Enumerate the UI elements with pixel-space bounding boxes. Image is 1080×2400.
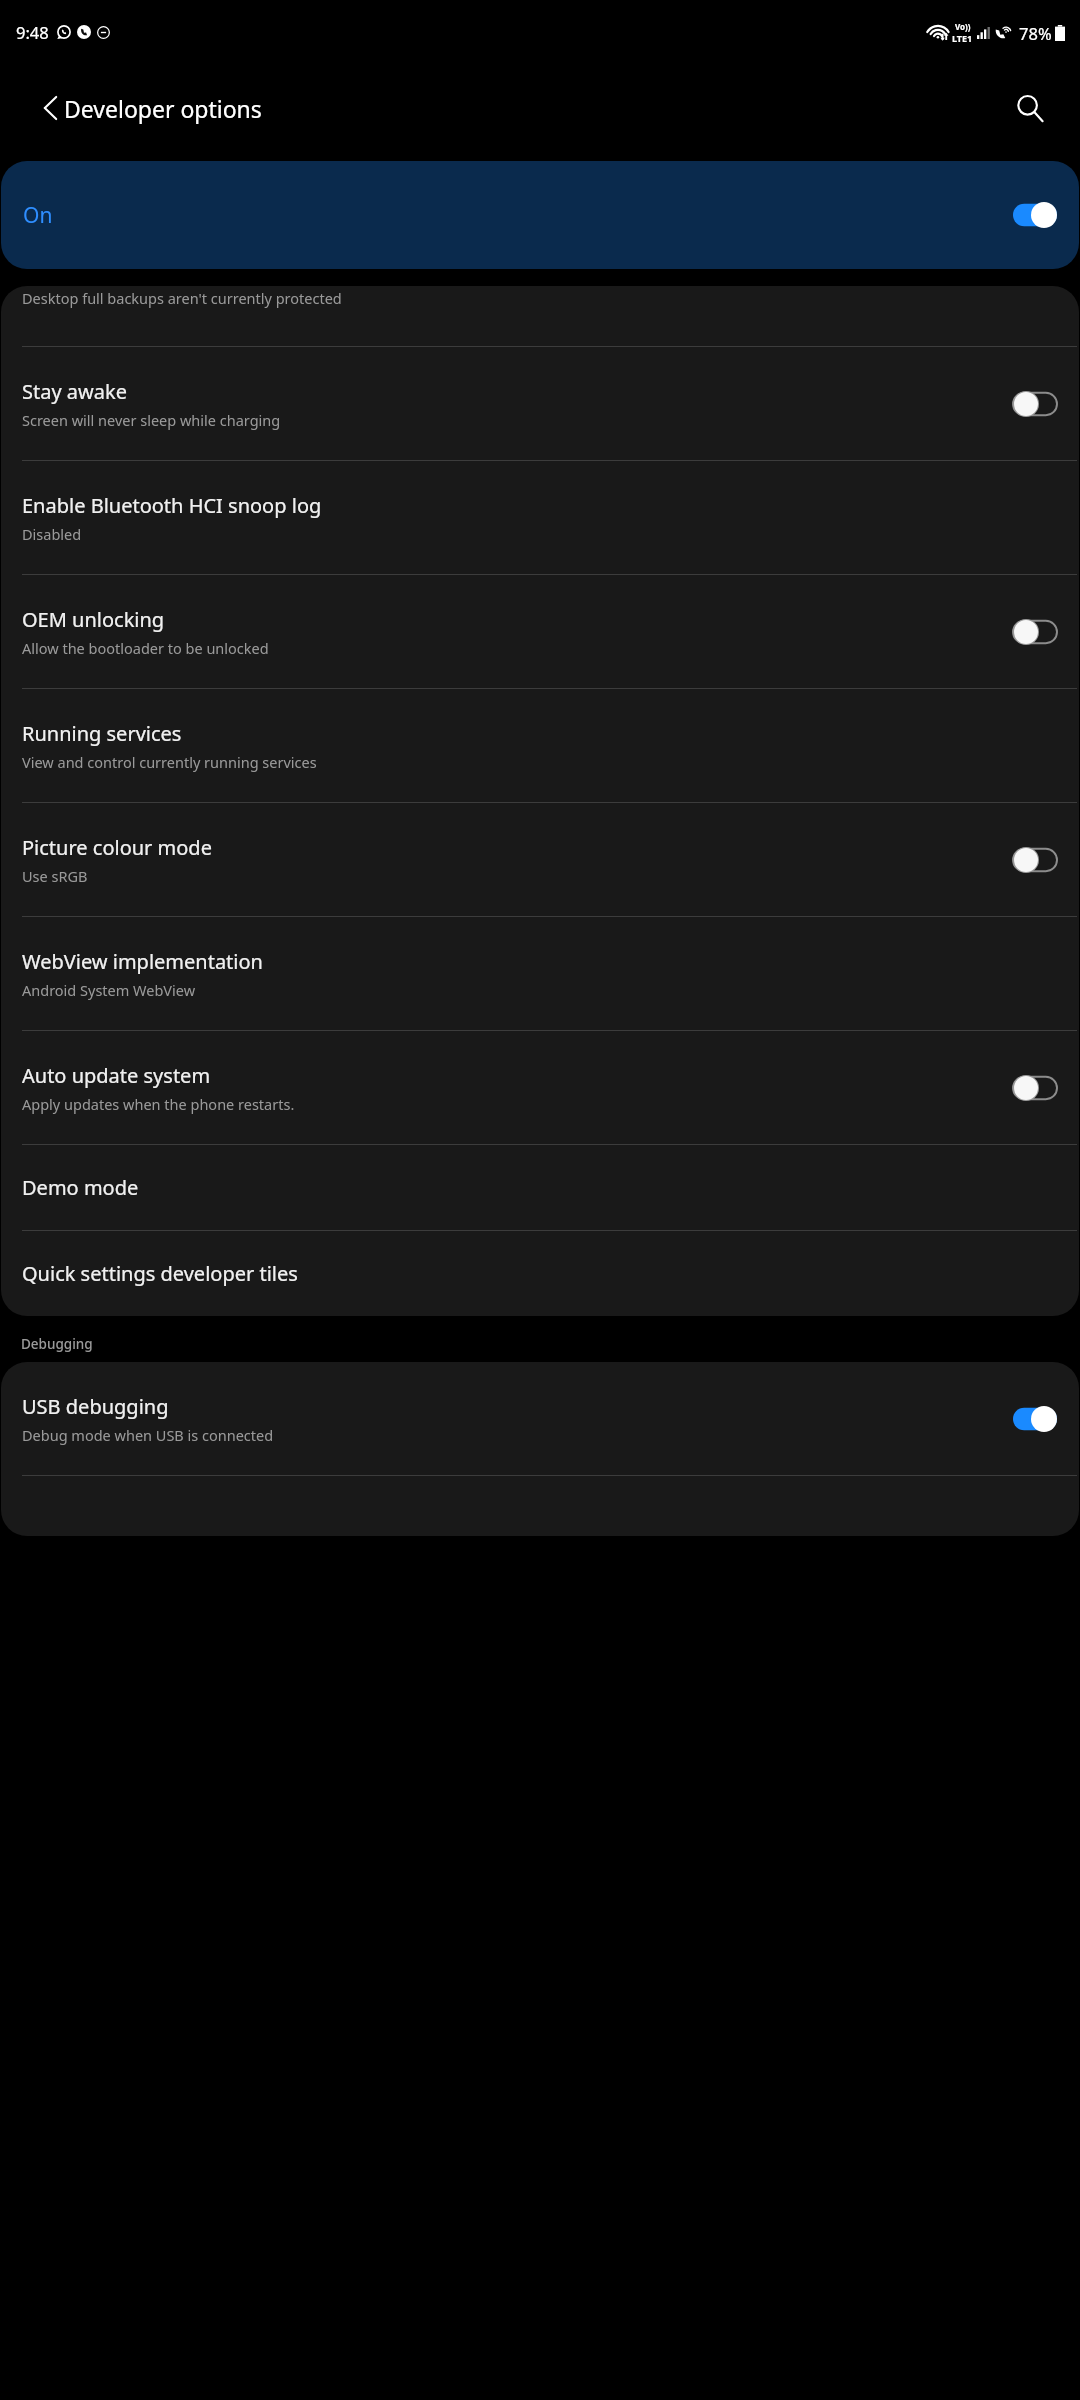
staticText: 9:48: [16, 21, 49, 43]
staticText: Stay awake: [22, 378, 127, 405]
staticText: Quick settings developer tiles: [22, 1260, 298, 1287]
button[interactable]: Stay awake: [1, 347, 1079, 460]
button[interactable]: Enable Bluetooth HCI snoop log: [1, 461, 1079, 574]
button[interactable]: On: [1, 161, 1079, 269]
staticText: Debug mode when USB is connected: [22, 1425, 274, 1445]
button[interactable]: Back: [25, 81, 79, 135]
staticText: LTE1: [952, 32, 973, 44]
staticText: Debugging: [21, 1335, 93, 1353]
staticText: On: [23, 201, 53, 230]
staticText: Apply updates when the phone restarts.: [22, 1094, 295, 1114]
button[interactable]: USB debugging: [1, 1362, 1079, 1475]
staticText: Developer options: [64, 93, 262, 124]
staticText: Enable Bluetooth HCI snoop log: [22, 492, 322, 519]
staticText: Android System WebView: [22, 980, 196, 1000]
staticText: Disabled: [22, 524, 82, 544]
staticText: USB debugging: [22, 1393, 169, 1420]
staticText: OEM unlocking: [22, 606, 165, 633]
staticText: Auto update system: [22, 1062, 211, 1089]
staticText: Desktop full backups aren't currently pr…: [22, 288, 342, 308]
button[interactable]: Quick settings developer tiles: [1, 1231, 1079, 1316]
staticText: WebView implementation: [22, 948, 263, 975]
staticText: View and control currently running servi…: [22, 752, 317, 772]
staticText: Screen will never sleep while charging: [22, 410, 281, 430]
staticText: Use sRGB: [22, 866, 88, 886]
button[interactable]: Auto update system: [1, 1031, 1079, 1144]
staticText: Picture colour mode: [22, 834, 212, 861]
button[interactable]: Running services: [1, 689, 1079, 802]
button[interactable]: OEM unlocking: [1, 575, 1079, 688]
button[interactable]: Picture colour mode: [1, 803, 1079, 916]
staticText: Vo)): [955, 21, 971, 32]
staticText: Running services: [22, 720, 182, 747]
button[interactable]: Search: [1002, 80, 1058, 136]
button[interactable]: Desktop full backups aren't currently pr…: [1, 286, 1079, 346]
staticText: Allow the bootloader to be unlocked: [22, 638, 269, 658]
button[interactable]: Demo mode: [1, 1145, 1079, 1230]
button[interactable]: WebView implementation: [1, 917, 1079, 1030]
staticText: Demo mode: [22, 1174, 139, 1201]
staticText: 78%: [1019, 22, 1052, 44]
